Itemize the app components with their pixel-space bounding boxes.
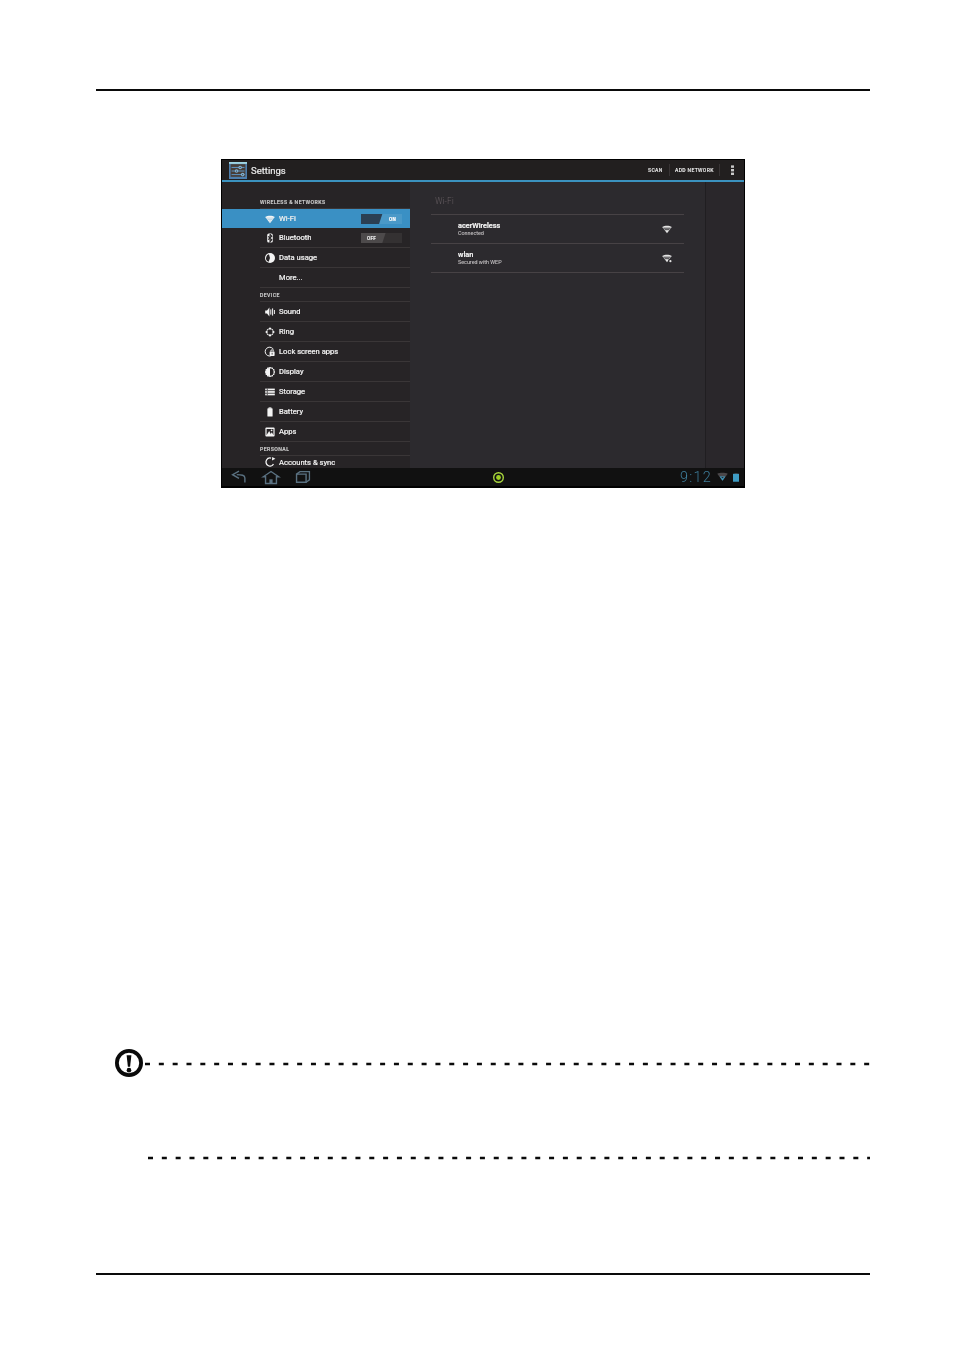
other: Settings xyxy=(229,162,247,179)
staticText: Sound xyxy=(279,307,301,316)
staticText: 9:12 xyxy=(680,469,712,486)
staticText: Wi-Fi xyxy=(435,196,454,206)
button[interactable]: ADD NETWORK xyxy=(670,160,719,180)
staticText: Settings xyxy=(251,165,286,176)
button[interactable]: Storage xyxy=(222,382,410,401)
button[interactable]: Bluetooth off xyxy=(361,233,402,243)
staticText: PERSONAL xyxy=(260,446,290,452)
staticText: ADD NETWORK xyxy=(675,167,714,173)
staticText: SCAN xyxy=(648,167,663,173)
button[interactable]: Back xyxy=(226,468,252,486)
button[interactable]: Apps xyxy=(222,422,410,441)
staticText: Wi-Fi xyxy=(279,214,296,223)
staticText: More... xyxy=(279,273,303,282)
staticText: Storage xyxy=(279,387,306,396)
button[interactable]: More... xyxy=(222,268,410,287)
button[interactable]: Bluetooth xyxy=(222,228,410,247)
staticText: DEVICE xyxy=(260,292,280,298)
button[interactable]: Wi-Fi on xyxy=(361,214,402,224)
staticText: Connected xyxy=(458,230,484,236)
staticText: Data usage xyxy=(279,253,318,262)
staticText: Battery xyxy=(279,407,304,416)
staticText: Secured with WEP xyxy=(458,259,502,265)
button[interactable]: Wi-Fi xyxy=(222,209,410,228)
staticText: Bluetooth xyxy=(279,233,312,242)
button[interactable]: acerWireless xyxy=(410,215,705,243)
button[interactable]: Accounts & sync xyxy=(222,456,410,468)
staticText: WIRELESS & NETWORKS xyxy=(260,199,326,205)
button[interactable]: Home xyxy=(258,468,284,486)
button[interactable]: Data usage xyxy=(222,248,410,267)
staticText: ON xyxy=(389,217,396,222)
button[interactable]: Screenshot xyxy=(489,468,507,486)
button[interactable]: wlan xyxy=(410,244,705,272)
staticText: Apps xyxy=(279,427,297,436)
button[interactable]: Battery xyxy=(222,402,410,421)
button[interactable]: Display xyxy=(222,362,410,381)
button[interactable]: More options xyxy=(720,160,744,180)
button[interactable]: Lock screen apps xyxy=(222,342,410,361)
staticText: Ring xyxy=(279,327,294,336)
staticText: Accounts & sync xyxy=(279,458,336,467)
staticText: wlan xyxy=(458,250,474,259)
staticText: OFF xyxy=(367,236,376,241)
button[interactable]: Sound xyxy=(222,302,410,321)
button[interactable]: Ring xyxy=(222,322,410,341)
staticText: Display xyxy=(279,367,304,376)
button[interactable]: Recent apps xyxy=(290,468,316,486)
staticText: acerWireless xyxy=(458,221,501,230)
staticText: Lock screen apps xyxy=(279,347,339,356)
button[interactable]: SCAN xyxy=(642,160,669,180)
